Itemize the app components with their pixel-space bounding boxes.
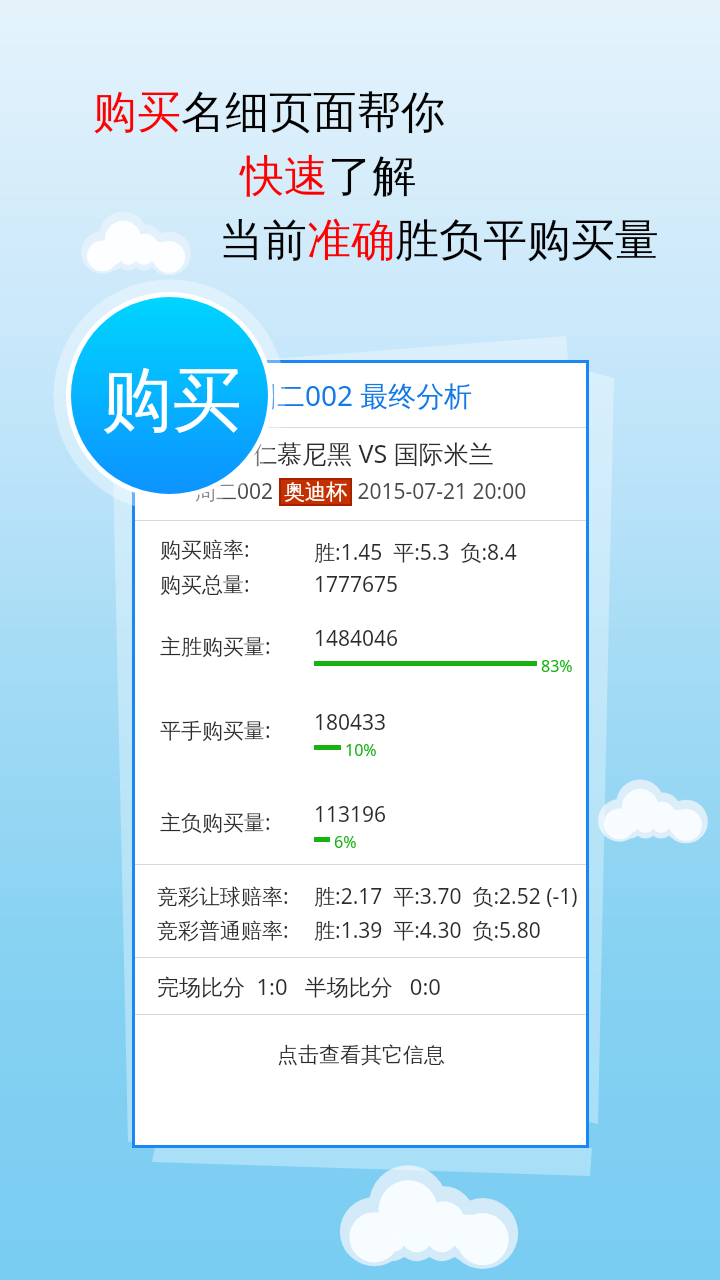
- staticText: 113196: [314, 800, 387, 829]
- button[interactable]: 完场比分 1:0 半场比分 0:0: [135, 958, 586, 1014]
- staticText: 完场比分 1:0 半场比分 0:0: [157, 971, 441, 1001]
- staticText: 主负购买量:: [160, 808, 271, 837]
- staticText: 拜仁慕尼黑 VS 国际米兰: [227, 436, 494, 470]
- staticText: 购买: [102, 357, 242, 445]
- staticText: 10%: [345, 739, 377, 761]
- staticText: 1777675: [314, 570, 399, 599]
- staticText: 83%: [541, 655, 573, 677]
- staticText: 平手购买量:: [160, 716, 271, 745]
- button[interactable]: 周二002 最终分析: [135, 363, 586, 427]
- staticText: 胜:2.17 平:3.70 负:2.52 (-1): [314, 882, 578, 911]
- staticText: 2015-07-21 20:00: [352, 477, 527, 506]
- staticText: 180433: [314, 708, 387, 737]
- staticText: 6%: [334, 831, 357, 853]
- button[interactable]: 购买: [50, 276, 289, 515]
- button[interactable]: 点击查看其它信息: [135, 1015, 586, 1095]
- staticText: 胜:1.45 平:5.3 负:8.4: [314, 538, 517, 567]
- staticText: 购买名细页面帮你: [93, 85, 445, 140]
- staticText: 快速了解: [240, 149, 416, 204]
- staticText: 购买总量:: [160, 570, 250, 599]
- staticText: 主胜购买量:: [160, 632, 271, 661]
- staticText: 竞彩普通赔率:: [157, 916, 289, 945]
- staticText: 当前准确胜负平购买量: [219, 213, 659, 268]
- staticText: 1484046: [314, 624, 399, 653]
- staticText: 胜:1.39 平:4.30 负:5.80: [314, 916, 541, 945]
- staticText: 购买赔率:: [160, 535, 250, 564]
- staticText: 周二002: [195, 477, 279, 506]
- staticText: 奥迪杯: [284, 479, 347, 505]
- staticText: 竞彩让球赔率:: [157, 882, 289, 911]
- staticText: 周二002 最终分析: [249, 376, 473, 414]
- staticText: 点击查看其它信息: [277, 1042, 445, 1068]
